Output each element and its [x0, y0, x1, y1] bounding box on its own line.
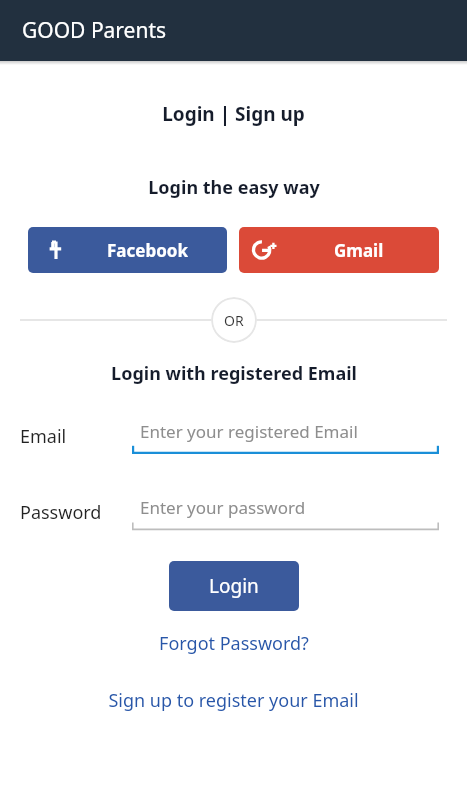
other: Sign in with Google [253, 238, 277, 262]
button[interactable]: Enter your registered Email [132, 417, 439, 455]
staticText: Forgot Password? [159, 631, 309, 656]
staticText: Login with registered Email [111, 361, 357, 386]
staticText: Facebook [107, 239, 188, 262]
button[interactable]: Sign in with Google [239, 227, 439, 273]
staticText: Sign up to register your Email [108, 688, 359, 713]
staticText: Enter your password [140, 496, 306, 519]
button[interactable]: Login [169, 561, 299, 611]
button[interactable]: Enter your password [132, 493, 439, 531]
button[interactable]: Login | Sign up [0, 101, 467, 127]
button[interactable]: Forgot Password? [0, 631, 467, 656]
button[interactable]: Facebook [28, 227, 227, 273]
staticText: Enter your registered Email [140, 420, 358, 443]
staticText: Login | Sign up [162, 101, 305, 127]
staticText: GOOD Parents [22, 16, 167, 45]
staticText: Login [209, 573, 259, 599]
staticText: Password [20, 500, 102, 525]
staticText: OR [224, 311, 244, 330]
staticText: Email [20, 424, 67, 449]
button[interactable]: Sign up to register your Email [0, 688, 467, 713]
staticText: Gmail [334, 239, 384, 262]
staticText: Login the easy way [148, 175, 320, 200]
other: Facebook [44, 240, 64, 260]
